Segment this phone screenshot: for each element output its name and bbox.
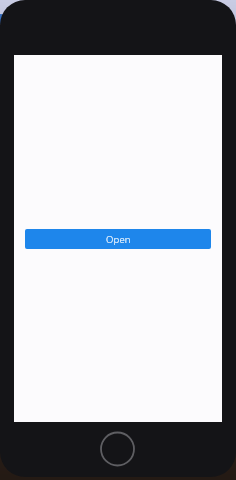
button[interactable]: Open: [25, 229, 211, 249]
staticText: Open: [106, 233, 131, 246]
